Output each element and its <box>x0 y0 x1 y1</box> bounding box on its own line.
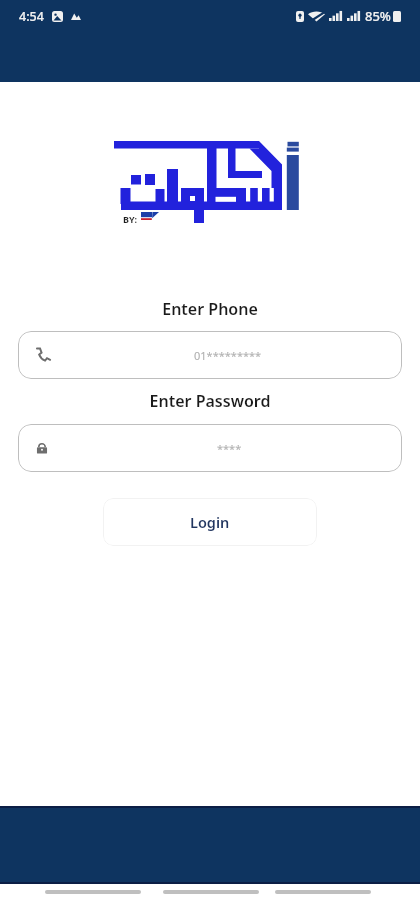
button[interactable]: Home <box>163 890 259 894</box>
staticText: BY: <box>123 213 138 225</box>
staticText: **** <box>217 441 242 456</box>
staticText: 4:54 <box>19 8 44 25</box>
button[interactable]: Login <box>103 498 317 546</box>
button[interactable]: Enter password <box>18 424 402 472</box>
staticText: Login <box>190 512 230 532</box>
staticText: Enter Phone <box>0 298 420 320</box>
staticText: Enter Password <box>0 390 420 412</box>
button[interactable]: Enter phone number <box>18 331 402 379</box>
button[interactable]: Back <box>45 890 141 894</box>
staticText: 85% <box>365 7 391 25</box>
staticText: 01********* <box>194 348 262 363</box>
button[interactable]: Recents <box>275 890 371 894</box>
